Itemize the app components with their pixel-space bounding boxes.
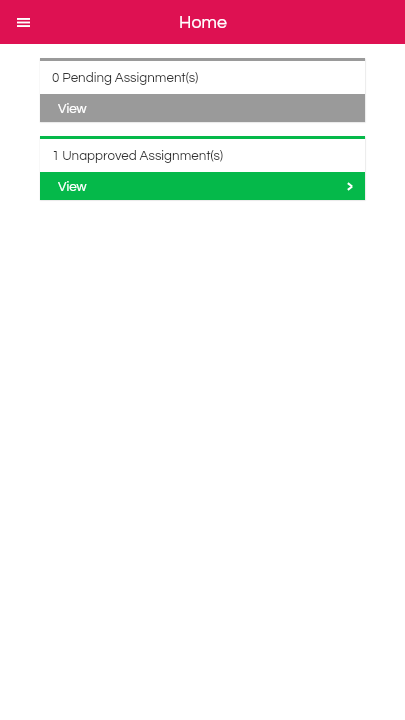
staticText: Home — [179, 13, 227, 31]
staticText: View — [58, 180, 87, 194]
staticText: 1 Unapproved Assignment(s) — [52, 149, 224, 163]
other: Open — [347, 182, 353, 191]
button[interactable]: Open navigation menu — [8, 7, 38, 37]
button[interactable]: View — [40, 94, 365, 122]
staticText: 0 Pending Assignment(s) — [52, 71, 199, 85]
staticText: View — [58, 102, 87, 116]
button[interactable]: View — [40, 172, 365, 200]
